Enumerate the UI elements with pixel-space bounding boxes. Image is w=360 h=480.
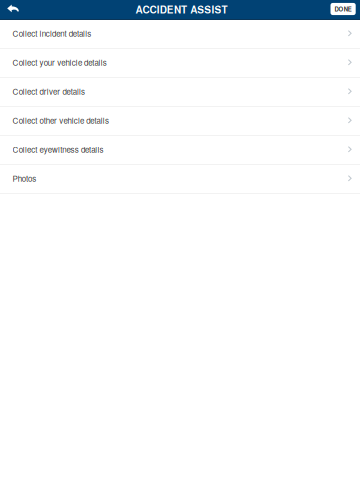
staticText: ACCIDENT ASSIST [135,2,227,17]
button[interactable]: Back [0,0,27,19]
staticText: Collect other vehicle details [13,115,109,126]
button[interactable]: DONE [330,3,360,16]
staticText: DONE [334,5,352,13]
staticText: Collect your vehicle details [13,57,107,68]
staticText: Photos [13,173,36,184]
button[interactable]: Collect driver details [0,78,360,107]
button[interactable]: Collect incident details [0,20,360,49]
button[interactable]: Collect your vehicle details [0,49,360,78]
staticText: Collect incident details [13,28,91,39]
staticText: Collect eyewitness details [13,144,103,155]
button[interactable]: Collect eyewitness details [0,136,360,165]
staticText: Collect driver details [13,86,85,97]
button[interactable]: Collect other vehicle details [0,107,360,136]
button[interactable]: Photos [0,165,360,194]
